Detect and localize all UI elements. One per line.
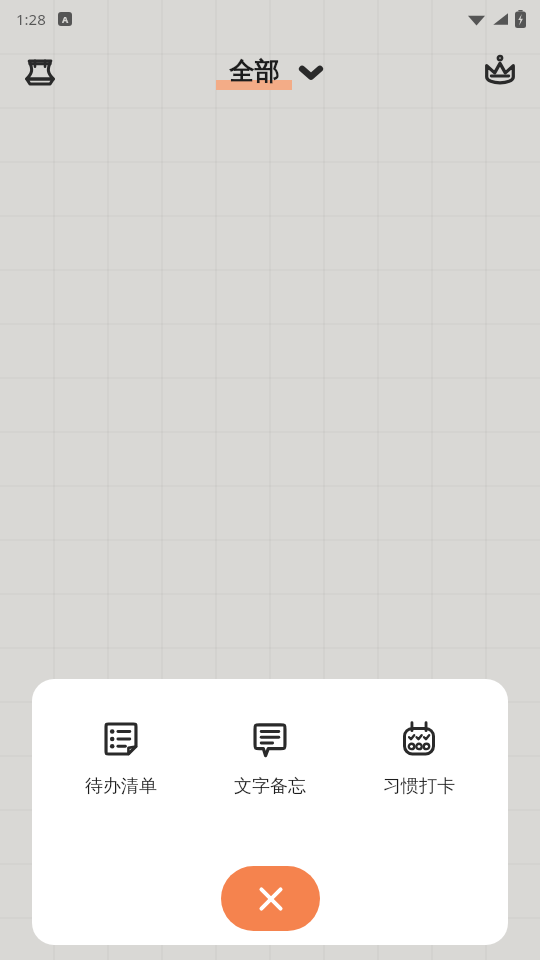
button[interactable]: 习惯打卡 [359, 713, 479, 802]
staticText: 文字备忘 [234, 775, 306, 798]
staticText: 待办清单 [85, 775, 157, 798]
staticText: 全部 [229, 56, 279, 87]
staticText: A [62, 13, 69, 25]
button[interactable]: Premium [474, 45, 526, 97]
button[interactable]: Close [221, 866, 320, 931]
button[interactable]: 全部 [216, 56, 324, 87]
staticText: 习惯打卡 [383, 775, 455, 798]
button[interactable]: Storage [14, 45, 66, 97]
button[interactable]: 文字备忘 [210, 713, 330, 802]
staticText: 1:28 [16, 9, 46, 29]
button[interactable]: 待办清单 [61, 713, 181, 802]
